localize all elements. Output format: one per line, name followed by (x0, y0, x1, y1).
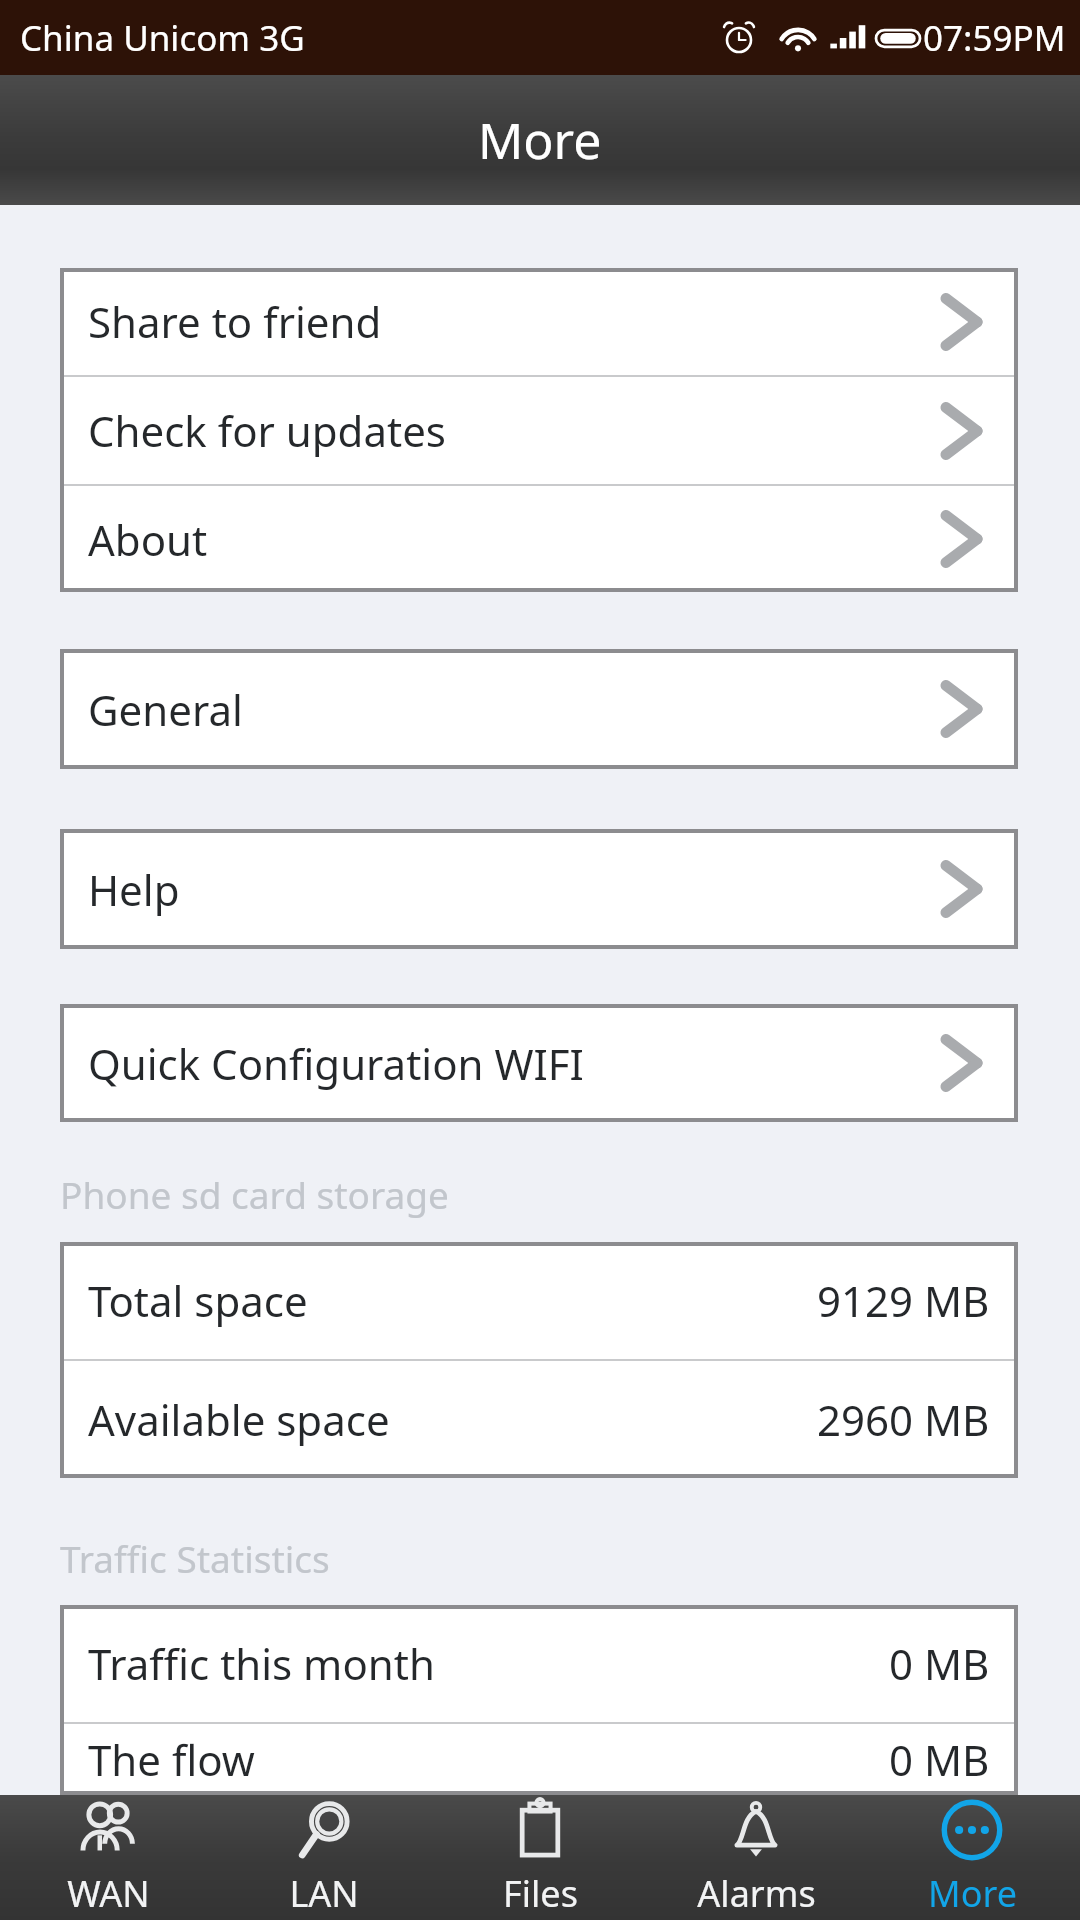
staticText: Check for updates (88, 402, 934, 459)
staticText: LAN (289, 1869, 359, 1918)
button[interactable]: Share to friend (60, 268, 1018, 375)
button[interactable]: WAN (0, 1795, 216, 1920)
button[interactable]: Quick Configuration WIFI (60, 1004, 1018, 1122)
button[interactable]: The flow (60, 1724, 1018, 1795)
staticText: Phone sd card storage (60, 1169, 449, 1219)
button[interactable]: Total space (60, 1242, 1018, 1359)
staticText: Files (503, 1869, 578, 1918)
staticText: Help (88, 861, 934, 918)
staticText: 0 MB (889, 1635, 990, 1692)
staticText: Quick Configuration WIFI (88, 1035, 934, 1092)
staticText: Traffic this month (88, 1635, 889, 1692)
button[interactable]: Check for updates (60, 377, 1018, 484)
button[interactable]: Help (60, 829, 1018, 949)
staticText: The flow (88, 1731, 889, 1788)
staticText: More (928, 1869, 1017, 1918)
staticText: Share to friend (88, 293, 934, 350)
staticText: Traffic Statistics (60, 1533, 330, 1583)
staticText: 2960 MB (817, 1391, 990, 1448)
button[interactable]: Alarms (648, 1795, 864, 1920)
staticText: 0 MB (889, 1731, 990, 1788)
button[interactable]: General (60, 649, 1018, 769)
staticText: About (88, 511, 934, 568)
button[interactable]: More (864, 1795, 1080, 1920)
staticText: Available space (88, 1391, 817, 1448)
staticText: Alarms (697, 1869, 816, 1918)
staticText: 9129 MB (817, 1272, 990, 1329)
button[interactable]: Files (432, 1795, 648, 1920)
staticText: 07:59PM (923, 14, 1066, 62)
button[interactable]: About (60, 486, 1018, 592)
staticText: Total space (88, 1272, 817, 1329)
staticText: China Unicom 3G (20, 14, 305, 62)
staticText: General (88, 681, 934, 738)
staticText: WAN (67, 1869, 150, 1918)
button[interactable]: Available space (60, 1361, 1018, 1478)
button[interactable]: LAN (216, 1795, 432, 1920)
staticText: More (478, 106, 602, 174)
button[interactable]: Traffic this month (60, 1605, 1018, 1722)
